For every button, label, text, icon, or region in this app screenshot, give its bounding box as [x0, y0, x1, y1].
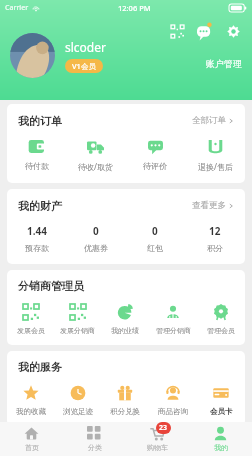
button[interactable]: 商品咨询	[149, 385, 197, 416]
staticText: 12:06 PM	[118, 3, 151, 13]
button[interactable]: 我的	[189, 422, 252, 456]
staticText: 商品咨询	[158, 407, 188, 416]
staticText: Carrier	[5, 3, 29, 13]
button[interactable]: Settings	[222, 20, 244, 42]
button[interactable]: 发展分销商	[54, 304, 101, 335]
staticText: 待收/取货	[78, 161, 113, 172]
button[interactable]: 管理分销商	[149, 304, 197, 335]
button[interactable]: 23	[126, 422, 189, 456]
button[interactable]: 我的收藏	[7, 385, 54, 416]
staticText: 账户管理	[206, 58, 242, 69]
staticText: 发展会员	[17, 326, 45, 335]
staticText: 分销商管理员	[18, 279, 84, 293]
staticText: 查看更多	[192, 200, 226, 211]
staticText: 12	[209, 224, 221, 238]
staticText: 待付款	[25, 161, 49, 171]
staticText: 0	[93, 224, 99, 238]
button[interactable]: 我的业绩	[101, 304, 149, 335]
staticText: 分类	[88, 443, 102, 452]
button[interactable]: V1会员	[72, 61, 96, 71]
button[interactable]: 首页	[0, 422, 63, 456]
staticText: 浏览足迹	[63, 407, 93, 416]
button[interactable]: 全部订单	[190, 113, 236, 128]
button[interactable]: 浏览足迹	[54, 385, 101, 416]
staticText: 退换/售后	[198, 161, 233, 172]
button[interactable]: 0	[66, 224, 125, 253]
button[interactable]: 12	[185, 224, 245, 253]
staticText: 待评价	[143, 161, 167, 171]
staticText: V1会员	[72, 61, 96, 71]
staticText: 我的	[214, 443, 228, 452]
button[interactable]: 退换/售后	[185, 138, 245, 172]
staticText: 发展分销商	[60, 326, 95, 335]
button[interactable]: Profile photo	[10, 33, 55, 78]
button[interactable]: 管理会员	[197, 304, 245, 335]
staticText: 管理分销商	[156, 326, 191, 335]
staticText: 优惠券	[84, 243, 108, 253]
staticText: 会员卡	[210, 407, 233, 416]
staticText: slcoder	[65, 39, 106, 55]
staticText: 我的财产	[18, 199, 62, 213]
button[interactable]: 1.44	[7, 224, 66, 253]
staticText: 购物车	[147, 443, 168, 452]
staticText: 全部订单	[192, 115, 226, 126]
staticText: 23	[159, 423, 168, 433]
button[interactable]: 积分兑换	[101, 385, 149, 416]
button[interactable]: 发展会员	[7, 304, 54, 335]
button[interactable]: 待收/取货	[66, 138, 125, 172]
staticText: 我的服务	[18, 360, 62, 374]
staticText: 我的订单	[18, 114, 62, 128]
staticText: 1.44	[27, 224, 47, 238]
button[interactable]: 分类	[63, 422, 126, 456]
staticText: 积分	[207, 243, 223, 253]
button[interactable]: Scan QR code	[166, 20, 188, 42]
button[interactable]: 查看更多	[190, 198, 236, 213]
staticText: 0	[152, 224, 158, 238]
button[interactable]: Messages	[194, 20, 216, 42]
staticText: 红包	[147, 243, 163, 253]
staticText: 管理会员	[207, 326, 235, 335]
staticText: 我的收藏	[16, 407, 46, 416]
button[interactable]: 账户管理	[202, 55, 246, 72]
staticText: 首页	[25, 443, 39, 452]
staticText: 预存款	[25, 243, 49, 253]
button[interactable]: 会员卡	[197, 385, 245, 416]
button[interactable]: 0	[125, 224, 185, 253]
staticText: 积分兑换	[110, 407, 140, 416]
staticText: 我的业绩	[111, 326, 139, 335]
button[interactable]: 待付款	[7, 138, 66, 171]
button[interactable]: 待评价	[125, 138, 185, 171]
